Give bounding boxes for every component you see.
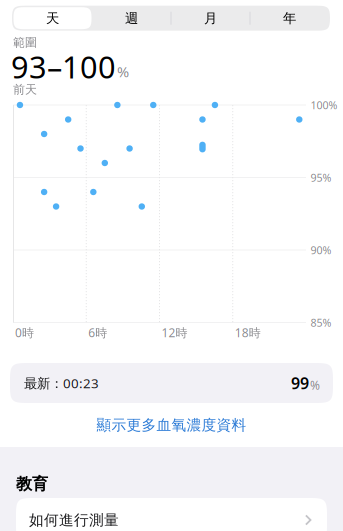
staticText: 前天 (13, 82, 37, 97)
staticText: % (117, 62, 129, 81)
button[interactable]: 月 (171, 7, 249, 29)
staticText: 最新：00:23 (24, 374, 99, 392)
staticText: 範圍 (13, 35, 37, 50)
staticText: 100% (310, 98, 337, 112)
staticText: 6時 (88, 324, 107, 340)
staticText: 12時 (161, 324, 187, 340)
staticText: % (310, 377, 320, 393)
staticText: 85% (310, 315, 331, 330)
staticText: 月 (204, 10, 217, 26)
button[interactable]: 天 (13, 7, 91, 29)
button[interactable]: 顯示更多血氧濃度資料 (0, 410, 343, 440)
staticText: 95% (310, 170, 331, 185)
staticText: 週 (125, 10, 138, 26)
staticText: 99 (291, 372, 309, 394)
staticText: 93–100 (11, 46, 116, 87)
staticText: 如何進行測量 (29, 511, 119, 529)
staticText: 天 (46, 10, 59, 26)
staticText: 0時 (15, 324, 34, 340)
button[interactable]: 年 (250, 7, 328, 29)
staticText: 教育 (16, 474, 48, 494)
button[interactable]: 週 (92, 7, 170, 29)
staticText: 年 (283, 10, 296, 26)
button[interactable]: 如何進行測量 (16, 498, 327, 531)
staticText: 90% (310, 243, 331, 257)
staticText: 18時 (235, 324, 261, 340)
staticText: 顯示更多血氧濃度資料 (96, 416, 246, 434)
